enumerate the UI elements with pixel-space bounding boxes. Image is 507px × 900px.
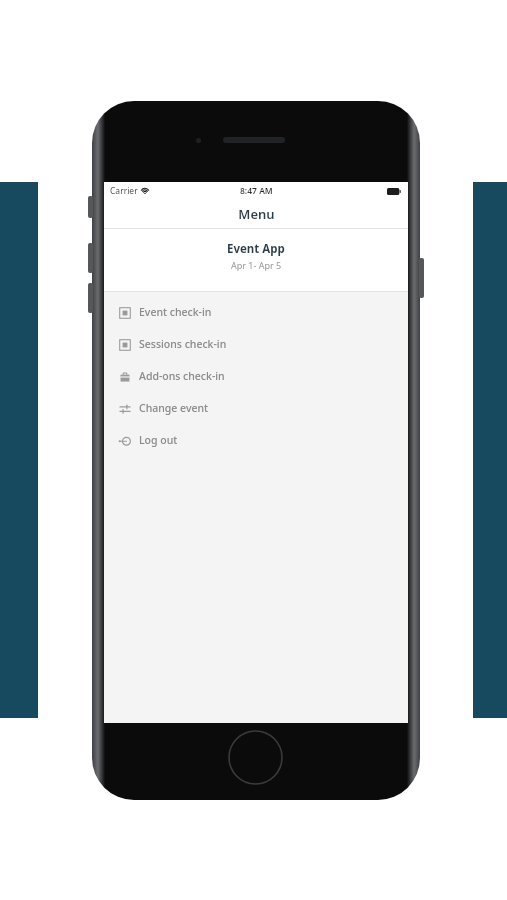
- staticText: Event App: [227, 241, 285, 257]
- button[interactable]: Event App: [104, 229, 408, 291]
- staticText: Carrier: [110, 185, 138, 197]
- other: Check-in: [119, 339, 131, 351]
- other: Log out: [119, 435, 131, 447]
- staticText: Event check-in: [139, 305, 212, 319]
- staticText: Apr 1- Apr 5: [231, 259, 282, 271]
- staticText: Add-ons check-in: [139, 369, 225, 383]
- staticText: Menu: [238, 205, 275, 223]
- button[interactable]: Change event: [104, 392, 408, 424]
- other: Check-in: [119, 307, 131, 319]
- staticText: Log out: [139, 433, 178, 447]
- staticText: Sessions check-in: [139, 337, 227, 351]
- staticText: Change event: [139, 401, 209, 415]
- button[interactable]: Check-in: [104, 296, 408, 328]
- other: Add-ons: [119, 371, 131, 383]
- button[interactable]: Log out: [104, 424, 408, 456]
- button[interactable]: Check-in: [104, 328, 408, 360]
- staticText: 8:47 AM: [240, 185, 273, 197]
- button[interactable]: Add-ons: [104, 360, 408, 392]
- other: Change event: [119, 403, 131, 415]
